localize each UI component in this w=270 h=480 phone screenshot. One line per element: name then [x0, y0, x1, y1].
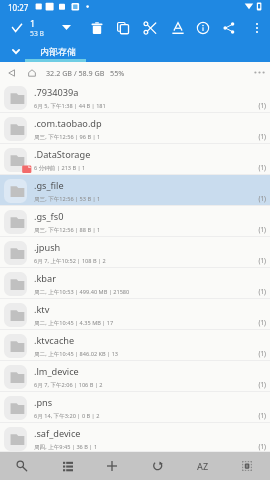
staticText: (1) — [252, 287, 266, 296]
button[interactable]: .ktvcache — [0, 330, 270, 361]
staticText: 6月 7, 上午10:52 | 108 B | 2 — [34, 257, 255, 265]
staticText: 53 B — [30, 29, 44, 38]
button[interactable]: Copy — [110, 16, 136, 40]
staticText: 10:27 — [8, 2, 29, 13]
staticText: .7934039a — [34, 86, 255, 99]
button[interactable]: Sort — [183, 452, 223, 480]
staticText: .kbar — [34, 272, 255, 285]
staticText: 周二, 上午10:45 | 846.02 KB | 13 — [34, 350, 255, 358]
staticText: .gs_file — [34, 179, 255, 192]
button[interactable]: Back — [0, 62, 22, 83]
staticText: (1) — [252, 132, 266, 141]
button[interactable]: Delete — [84, 16, 110, 40]
staticText: (1) — [252, 318, 266, 327]
button[interactable]: .kbar — [0, 268, 270, 299]
staticText: (1) — [252, 101, 266, 110]
staticText: .lm_device — [34, 365, 255, 378]
staticText: 内部存储 — [40, 46, 76, 57]
staticText: (1) — [252, 256, 266, 265]
button[interactable]: Search — [2, 452, 42, 480]
staticText: 周三, 下午12:56 | 96 B | 1 — [34, 133, 255, 141]
staticText: AZ — [197, 460, 209, 472]
staticText: (1) — [252, 349, 266, 358]
button[interactable]: .lm_device — [0, 361, 270, 392]
staticText: (1) — [252, 380, 266, 389]
staticText: 周三, 下午12:56 | 88 B | 1 — [34, 226, 255, 234]
staticText: (1) — [252, 225, 266, 234]
button[interactable]: .7934039a — [0, 82, 270, 113]
staticText: 周四, 上午9:45 | 36 B | 1 — [34, 443, 255, 451]
staticText: .gs_fs0 — [34, 210, 255, 223]
button[interactable]: Share — [216, 16, 242, 40]
button[interactable]: .saf_device — [0, 423, 270, 452]
button[interactable]: Cut — [137, 16, 163, 40]
button[interactable]: New folder — [92, 452, 132, 480]
button[interactable]: Storage options — [248, 62, 270, 83]
staticText: .pns — [34, 396, 255, 409]
staticText: 6月 5, 下午1:38 | 44 B | 181 — [34, 102, 255, 110]
button[interactable]: .com.taobao.dp — [0, 113, 270, 144]
button[interactable]: Deselect all — [6, 16, 28, 40]
staticText: (1) — [252, 194, 266, 203]
button[interactable]: Home — [22, 62, 42, 83]
staticText: .ktvcache — [34, 334, 255, 347]
staticText: 6月 7, 下午2:06 | 106 B | 2 — [34, 381, 255, 389]
staticText: .saf_device — [34, 427, 255, 440]
staticText: 6 分钟前 | 213 B | 1 — [34, 164, 255, 172]
button[interactable]: Select all — [227, 452, 267, 480]
button[interactable]: .gs_file — [0, 175, 270, 206]
button[interactable]: .DataStorage — [0, 144, 270, 175]
button[interactable]: .jpush — [0, 237, 270, 268]
button[interactable]: More options — [244, 16, 270, 40]
staticText: .jpush — [34, 241, 255, 254]
staticText: .DataStorage — [34, 148, 255, 161]
staticText: 周二, 上午10:53 | 499.40 MB | 21580 — [34, 288, 255, 296]
button[interactable]: .gs_fs0 — [0, 206, 270, 237]
staticText: 周三, 下午12:56 | 53 B | 1 — [34, 195, 255, 203]
button[interactable]: 内部存储 — [0, 41, 270, 61]
button[interactable]: .ktv — [0, 299, 270, 330]
staticText: 周二, 上午10:45 | 4.35 MB | 17 — [34, 319, 255, 327]
button[interactable]: Properties — [190, 16, 216, 40]
staticText: (1) — [252, 163, 266, 172]
staticText: (1) — [252, 442, 266, 451]
staticText: .ktv — [34, 303, 255, 316]
staticText: 1 — [30, 17, 36, 29]
button[interactable]: Refresh — [138, 452, 178, 480]
staticText: (1) — [252, 411, 266, 420]
staticText: 32.2 GB / 58.9 GB 55% — [46, 68, 125, 78]
button[interactable]: Expand selection — [56, 15, 76, 39]
button[interactable]: View mode — [48, 452, 88, 480]
button[interactable]: .pns — [0, 392, 270, 423]
staticText: .com.taobao.dp — [34, 117, 255, 130]
staticText: 6月 14, 下午3:20 | 0 B | 2 — [34, 412, 255, 420]
button[interactable]: Rename — [165, 16, 191, 40]
